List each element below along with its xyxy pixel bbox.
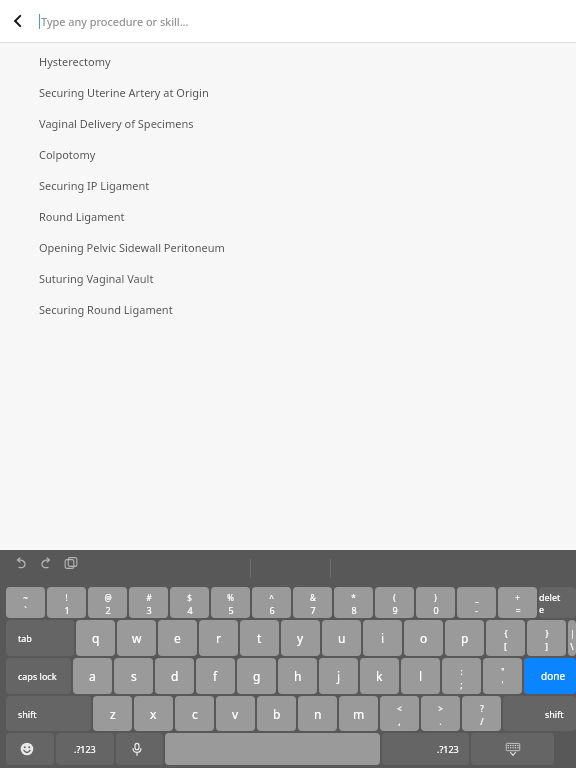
button[interactable]: Colpotomy xyxy=(0,139,576,170)
button[interactable]: + xyxy=(498,587,537,618)
button[interactable]: delete xyxy=(539,587,576,618)
staticText: i xyxy=(381,630,385,646)
staticText: 5 xyxy=(228,604,234,616)
staticText: 2 xyxy=(105,604,111,616)
button[interactable]: s xyxy=(114,658,153,694)
button[interactable]: * xyxy=(334,587,373,618)
staticText: & xyxy=(310,592,316,603)
button[interactable]: ! xyxy=(47,587,86,618)
staticText: caps lock xyxy=(18,670,57,682)
button[interactable]: i xyxy=(363,620,402,656)
button[interactable]: Opening Pelvic Sidewall Peritoneum xyxy=(0,232,576,263)
button[interactable]: e xyxy=(158,620,197,656)
button[interactable]: done xyxy=(524,658,576,694)
button[interactable]: ^ xyxy=(252,587,291,618)
staticText: ^ xyxy=(269,592,274,603)
button[interactable]: f xyxy=(196,658,235,694)
button[interactable]: q xyxy=(76,620,115,656)
staticText: s xyxy=(131,668,137,684)
staticText: delete xyxy=(539,591,564,615)
button[interactable]: b xyxy=(257,696,296,731)
button[interactable]: $ xyxy=(170,587,209,618)
button[interactable]: n xyxy=(298,696,337,731)
staticText: < xyxy=(397,703,402,714)
button[interactable]: caps lock xyxy=(6,658,71,694)
button[interactable]: Back xyxy=(1,4,35,38)
button[interactable]: ( xyxy=(375,587,414,618)
button[interactable]: shift xyxy=(6,696,91,731)
button[interactable]: < xyxy=(380,696,419,731)
button[interactable]: t xyxy=(240,620,279,656)
button[interactable]: { xyxy=(486,620,525,656)
button[interactable]: Redo xyxy=(33,550,58,575)
staticText: + xyxy=(515,592,520,603)
button[interactable]: | xyxy=(568,620,576,656)
button[interactable]: Vaginal Delivery of Specimens xyxy=(0,108,576,139)
button[interactable]: % xyxy=(211,587,250,618)
button[interactable]: y xyxy=(281,620,320,656)
staticText: h xyxy=(294,668,302,684)
staticText: } xyxy=(545,628,549,639)
button[interactable]: o xyxy=(404,620,443,656)
button[interactable]: " xyxy=(483,658,522,694)
button[interactable]: d xyxy=(155,658,194,694)
button[interactable]: g xyxy=(237,658,276,694)
button[interactable]: z xyxy=(93,696,132,731)
button[interactable]: m xyxy=(339,696,378,731)
button[interactable]: Securing IP Ligament xyxy=(0,170,576,201)
button[interactable]: c xyxy=(175,696,214,731)
button[interactable]: Hysterectomy xyxy=(0,46,576,77)
button[interactable]: .?123 xyxy=(56,733,114,765)
staticText: ! xyxy=(65,592,68,603)
button[interactable]: > xyxy=(421,696,460,731)
staticText: j xyxy=(337,668,341,684)
staticText: q xyxy=(92,630,100,646)
button[interactable]: tab xyxy=(6,620,74,656)
button[interactable]: # xyxy=(129,587,168,618)
staticText: - xyxy=(475,604,478,616)
button[interactable]: & xyxy=(293,587,332,618)
button[interactable]: Paste xyxy=(58,550,83,575)
button[interactable]: ) xyxy=(416,587,455,618)
button[interactable]: .?123 xyxy=(382,733,469,765)
button[interactable]: ~ xyxy=(6,587,45,618)
button[interactable]: @ xyxy=(88,587,127,618)
button[interactable]: k xyxy=(360,658,399,694)
staticText: 9 xyxy=(392,604,398,616)
button[interactable]: shift xyxy=(503,696,576,731)
button[interactable]: l xyxy=(401,658,440,694)
button[interactable]: Round Ligament xyxy=(0,201,576,232)
button[interactable]: j xyxy=(319,658,358,694)
button[interactable]: p xyxy=(445,620,484,656)
staticText: y xyxy=(297,630,304,646)
staticText: tab xyxy=(18,632,32,644)
button[interactable]: Dictate xyxy=(116,733,163,765)
button[interactable]: r xyxy=(199,620,238,656)
staticText: l xyxy=(419,668,423,684)
button[interactable]: Hide keyboard xyxy=(471,733,554,765)
staticText: Hysterectomy xyxy=(39,54,111,69)
button[interactable]: v xyxy=(216,696,255,731)
staticText: k xyxy=(376,668,383,684)
button[interactable]: Undo xyxy=(8,550,33,575)
button[interactable]: w xyxy=(117,620,156,656)
button[interactable]: Type any procedure or skill... xyxy=(36,0,576,42)
button[interactable]: a xyxy=(73,658,112,694)
button[interactable]: u xyxy=(322,620,361,656)
staticText: [ xyxy=(504,640,507,652)
button[interactable]: _ xyxy=(457,587,496,618)
staticText: v xyxy=(232,706,239,722)
button[interactable]: h xyxy=(278,658,317,694)
button[interactable]: Suturing Vaginal Vault xyxy=(0,263,576,294)
button[interactable]: } xyxy=(527,620,566,656)
button[interactable]: Securing Round Ligament xyxy=(0,294,576,325)
button[interactable]: x xyxy=(134,696,173,731)
button[interactable]: ? xyxy=(462,696,501,731)
button[interactable]: : xyxy=(442,658,481,694)
button[interactable]: Securing Uterine Artery at Origin xyxy=(0,77,576,108)
staticText: > xyxy=(438,703,443,714)
button[interactable]: Emoji xyxy=(6,733,54,765)
staticText: x xyxy=(150,706,157,722)
staticText: : xyxy=(460,666,463,677)
